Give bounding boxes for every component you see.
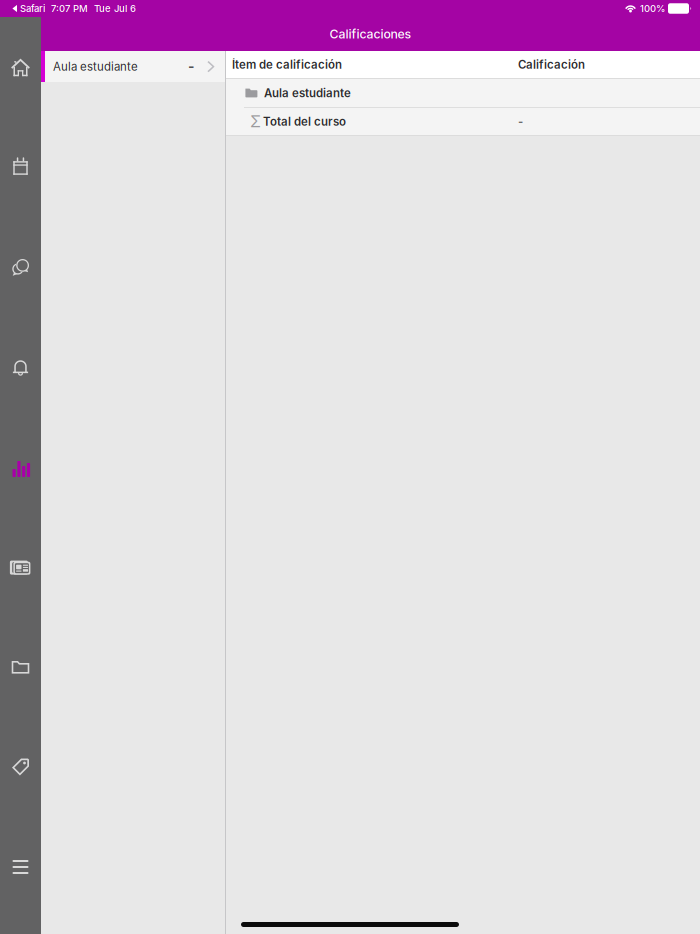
button[interactable]: Σ <box>226 108 700 135</box>
button[interactable]: Back to Safari <box>0 3 45 14</box>
button[interactable]: Messages <box>0 217 41 317</box>
staticText: Ítem de calificación <box>232 58 342 71</box>
staticText: Tue Jul 6 <box>94 3 136 14</box>
button[interactable]: More <box>0 817 41 917</box>
staticText: - <box>518 115 523 128</box>
staticText: Aula estudiante <box>53 60 138 73</box>
staticText: Total del curso <box>263 115 346 128</box>
button[interactable]: Home <box>0 17 41 117</box>
button[interactable]: Notifications <box>0 317 41 417</box>
staticText: Calificaciones <box>329 27 411 41</box>
button[interactable]: Grades <box>0 417 41 517</box>
button[interactable]: Calendar <box>0 117 41 217</box>
button[interactable]: News <box>0 517 41 617</box>
staticText: 7:07 PM <box>51 3 88 14</box>
staticText: Aula estudiante <box>264 86 351 100</box>
button[interactable]: Aula estudiante <box>226 79 700 107</box>
button[interactable]: Aula estudiante <box>41 51 225 82</box>
staticText: Σ <box>250 112 261 131</box>
button[interactable]: Files <box>0 617 41 717</box>
staticText: Calificación <box>518 58 585 71</box>
staticText: Safari <box>20 3 45 14</box>
button[interactable]: Tags <box>0 717 41 817</box>
staticText: 100% <box>640 3 665 14</box>
staticText: - <box>188 58 194 75</box>
